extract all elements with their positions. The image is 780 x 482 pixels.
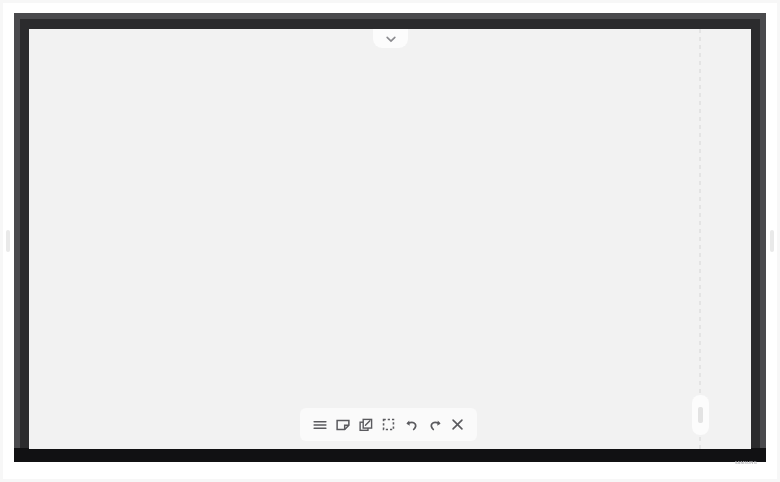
button[interactable]: Copy xyxy=(354,408,377,441)
button[interactable]: Select xyxy=(377,408,400,441)
button[interactable]: Undo xyxy=(400,408,423,441)
button[interactable]: New page xyxy=(331,408,354,441)
staticText: SAMSUNG xyxy=(735,460,757,465)
button[interactable]: Redo xyxy=(423,408,446,441)
button[interactable]: Expand menu xyxy=(373,29,408,48)
button[interactable]: Close xyxy=(446,408,469,441)
button[interactable]: Menu xyxy=(308,408,331,441)
button[interactable]: Pen holder xyxy=(692,395,709,435)
